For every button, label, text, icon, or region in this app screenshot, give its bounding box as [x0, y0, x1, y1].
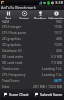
staticText: Date	[2, 84, 10, 89]
staticText: 7.9 MB	[51, 60, 62, 65]
button[interactable]: 2D graphics	[0, 35, 64, 41]
button[interactable]: SD card write	[0, 53, 64, 59]
button[interactable]: SD card read	[0, 59, 64, 65]
button[interactable]: Ranking	[32, 10, 48, 19]
staticText: Submit Score	[40, 92, 63, 97]
button[interactable]: CPU frequency	[0, 71, 64, 77]
button[interactable]: Scores	[16, 10, 32, 19]
button[interactable]: Submit Score	[32, 89, 64, 100]
button[interactable]: Date	[0, 83, 64, 89]
staticText: 3D graphics	[2, 42, 21, 47]
staticText: Scores	[19, 17, 29, 19]
button[interactable]: Total Score	[0, 77, 64, 83]
button[interactable]: RAM	[0, 19, 64, 24]
staticText: 281 MB / 1024 MB	[33, 84, 62, 89]
staticText: 2D graphics	[2, 36, 21, 41]
staticText: RAM	[2, 19, 10, 24]
staticText: 3:38	[55, 0, 63, 5]
staticText: 486	[56, 36, 62, 41]
staticText: 982	[56, 19, 62, 24]
staticText: Score Chart	[9, 92, 29, 97]
staticText: 1517	[54, 30, 62, 35]
staticText: SD card read	[2, 60, 23, 65]
staticText: CPU integer	[2, 24, 22, 29]
staticText: Loading 12x	[42, 66, 62, 71]
button[interactable]: 3D graphics	[0, 41, 64, 47]
staticText: AnTuTu Benchmark	[1, 5, 36, 10]
staticText: Test	[5, 17, 11, 19]
button[interactable]: Test	[0, 10, 16, 19]
staticText: CPU frequency	[2, 72, 26, 77]
staticText: CPU float-point	[2, 30, 27, 35]
staticText: 1596	[54, 24, 62, 29]
button[interactable]: Information	[48, 10, 64, 19]
staticText: Total Score	[2, 78, 20, 83]
staticText: 406	[56, 48, 62, 53]
button[interactable]: Total score	[0, 65, 64, 71]
staticText: 5.0 MB	[51, 54, 62, 59]
button[interactable]: CPU integer	[0, 24, 64, 29]
staticText: SD card write	[2, 54, 24, 59]
staticText: 6671	[54, 78, 62, 83]
staticText: Information	[48, 17, 64, 19]
staticText: 1259	[54, 42, 62, 47]
staticText: Ranking	[34, 17, 46, 19]
staticText: Database IO	[2, 48, 22, 53]
button[interactable]: Score Chart	[0, 89, 32, 100]
button[interactable]: Database IO	[0, 47, 64, 53]
staticText: Total score	[2, 66, 20, 71]
button[interactable]: CPU float-point	[0, 29, 64, 35]
staticText: Loading 13x	[42, 72, 62, 77]
